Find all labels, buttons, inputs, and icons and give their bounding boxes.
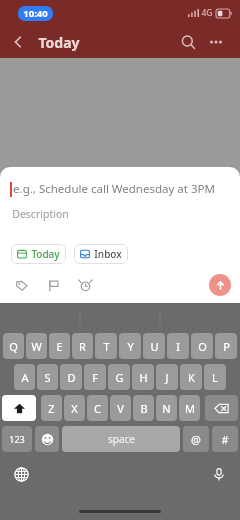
staticText: Today bbox=[31, 247, 60, 261]
button[interactable]: W bbox=[26, 333, 47, 359]
staticText: L bbox=[212, 370, 218, 385]
staticText: C bbox=[94, 401, 101, 416]
staticText: U bbox=[150, 339, 159, 354]
button[interactable]: Change keyboard bbox=[10, 463, 32, 485]
button[interactable]: D bbox=[60, 364, 82, 390]
button[interactable]: Numbers bbox=[2, 426, 32, 452]
button[interactable]: More options bbox=[202, 28, 230, 56]
button[interactable]: Y bbox=[119, 333, 141, 359]
button[interactable]: Reminder bbox=[75, 275, 95, 295]
staticText: H bbox=[139, 370, 148, 385]
button[interactable]: Dictate bbox=[208, 463, 230, 485]
button[interactable]: T bbox=[95, 333, 117, 359]
button[interactable]: X bbox=[64, 395, 85, 421]
staticText: E bbox=[56, 339, 63, 354]
staticText: Y bbox=[127, 339, 134, 354]
button[interactable]: B bbox=[133, 395, 154, 421]
staticText: Q bbox=[9, 339, 18, 354]
button[interactable]: P bbox=[215, 333, 237, 359]
button[interactable]: N bbox=[156, 395, 177, 421]
button[interactable]: Back bbox=[4, 28, 32, 56]
button[interactable]: A bbox=[14, 364, 35, 390]
staticText: K bbox=[188, 370, 195, 385]
staticText: A bbox=[21, 370, 29, 385]
button[interactable]: M bbox=[179, 395, 200, 421]
staticText: I bbox=[176, 339, 180, 354]
staticText: 123 bbox=[9, 433, 25, 445]
staticText: O bbox=[198, 339, 207, 354]
staticText: X bbox=[71, 401, 78, 416]
button[interactable]: E bbox=[49, 333, 70, 359]
button[interactable]: R bbox=[72, 333, 93, 359]
button[interactable]: Space bbox=[62, 426, 180, 452]
button[interactable]: Q bbox=[3, 333, 24, 359]
staticText: V bbox=[117, 401, 124, 416]
staticText: 10:40 bbox=[23, 7, 48, 20]
button[interactable]: H bbox=[132, 364, 154, 390]
button[interactable]: J bbox=[156, 364, 178, 390]
button[interactable]: K bbox=[180, 364, 202, 390]
staticText: Today bbox=[38, 33, 80, 52]
staticText: B bbox=[140, 401, 148, 416]
button[interactable]: Labels bbox=[11, 275, 31, 295]
staticText: D bbox=[67, 370, 76, 385]
staticText: J bbox=[165, 370, 169, 385]
staticText: R bbox=[79, 339, 86, 354]
staticText: F bbox=[92, 370, 98, 385]
staticText: P bbox=[223, 339, 230, 354]
button[interactable]: Delete bbox=[205, 395, 238, 421]
staticText: M bbox=[185, 401, 195, 416]
staticText: space bbox=[108, 432, 135, 446]
button[interactable]: V bbox=[110, 395, 131, 421]
button[interactable]: Emoji bbox=[35, 426, 59, 452]
staticText: Inbox bbox=[94, 247, 122, 261]
button[interactable]: Inbox bbox=[74, 244, 128, 264]
staticText: 4G bbox=[201, 7, 213, 19]
button[interactable]: Z bbox=[41, 395, 62, 421]
button[interactable]: Shift bbox=[2, 395, 36, 421]
staticText: @ bbox=[191, 432, 201, 447]
button[interactable]: S bbox=[37, 364, 58, 390]
staticText: T bbox=[103, 339, 110, 354]
button[interactable]: F bbox=[84, 364, 106, 390]
staticText: # bbox=[221, 432, 229, 447]
button[interactable]: G bbox=[108, 364, 130, 390]
button[interactable]: Today bbox=[11, 244, 66, 264]
button[interactable]: Priority bbox=[43, 275, 63, 295]
staticText: e.g., Schedule call Wednesday at 3PM bbox=[13, 181, 215, 197]
staticText: W bbox=[31, 339, 42, 354]
staticText: N bbox=[162, 401, 171, 416]
button[interactable]: At sign bbox=[183, 426, 209, 452]
button[interactable]: L bbox=[204, 364, 226, 390]
button[interactable]: U bbox=[143, 333, 165, 359]
button[interactable]: O bbox=[191, 333, 213, 359]
staticText: G bbox=[115, 370, 124, 385]
button[interactable]: I bbox=[167, 333, 189, 359]
staticText: S bbox=[44, 370, 51, 385]
staticText: Z bbox=[48, 401, 55, 416]
button[interactable]: Search bbox=[174, 28, 202, 56]
button[interactable]: Add task bbox=[209, 274, 231, 296]
staticText: Description bbox=[12, 207, 69, 221]
button[interactable]: C bbox=[87, 395, 108, 421]
button[interactable]: Hash bbox=[212, 426, 238, 452]
